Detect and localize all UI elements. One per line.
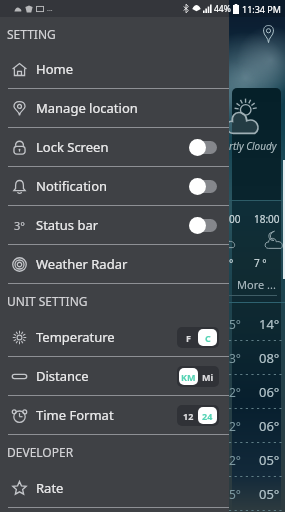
button[interactable]: Distance <box>0 357 229 395</box>
button[interactable]: Toggle <box>189 177 217 195</box>
staticText: 24 <box>202 410 213 422</box>
staticText: UNIT SETTING <box>7 293 88 309</box>
staticText: 5° <box>229 486 242 502</box>
button[interactable]: Time Format <box>0 396 229 434</box>
staticText: 08° <box>259 349 280 367</box>
button[interactable]: Rate <box>0 469 229 507</box>
staticText: Manage location <box>36 99 138 117</box>
staticText: Distance <box>36 367 89 385</box>
staticText: 06° <box>259 417 280 435</box>
button[interactable]: Lock Screen <box>0 128 229 166</box>
staticText: 44% <box>214 3 231 15</box>
staticText: Home <box>36 60 73 78</box>
staticText: 14° <box>259 315 280 333</box>
button[interactable]: Weather Radar <box>0 245 229 283</box>
staticText: 12 <box>183 410 194 422</box>
staticText: 2° <box>229 418 242 434</box>
staticText: Temperature <box>36 328 115 346</box>
staticText: 7 ° <box>254 256 267 268</box>
staticText: Weather Radar <box>36 255 128 273</box>
staticText: ° <box>229 256 234 268</box>
staticText: 5° <box>229 316 242 332</box>
staticText: Notification <box>36 177 108 195</box>
staticText: Status bar <box>36 216 99 234</box>
staticText: KM <box>181 371 196 383</box>
staticText: Mi <box>202 371 214 383</box>
staticText: 00 <box>229 212 241 223</box>
staticText: 05° <box>259 485 280 503</box>
button[interactable]: KM <box>177 366 219 387</box>
staticText: F <box>186 332 191 344</box>
staticText: rtly Cloudy <box>229 139 277 153</box>
button[interactable]: 12 <box>177 405 219 426</box>
staticText: More ... <box>237 277 276 292</box>
staticText: 2° <box>229 384 242 400</box>
staticText: 3° <box>229 350 242 366</box>
staticText: ... <box>47 4 53 14</box>
button[interactable]: Home <box>0 50 229 88</box>
staticText: Time Format <box>36 406 114 424</box>
button[interactable]: Notification <box>0 167 229 205</box>
staticText: 2° <box>229 452 242 468</box>
staticText: Rate <box>36 479 64 497</box>
button[interactable]: F <box>177 327 219 348</box>
staticText: C <box>205 332 211 344</box>
button[interactable]: Toggle <box>189 138 217 156</box>
staticText: 11:34 PM <box>242 3 281 15</box>
staticText: Lock Screen <box>36 138 109 156</box>
button[interactable]: Toggle <box>189 216 217 234</box>
button[interactable]: Temperature <box>0 318 229 356</box>
staticText: DEVELOPER <box>7 444 74 460</box>
staticText: 3° <box>14 218 25 233</box>
button[interactable]: Manage location <box>0 89 229 127</box>
staticText: 06° <box>259 383 280 401</box>
button[interactable]: 3° <box>0 206 229 244</box>
staticText: SETTING <box>7 26 56 42</box>
staticText: 18:00 <box>254 212 280 223</box>
staticText: 05° <box>259 451 280 469</box>
